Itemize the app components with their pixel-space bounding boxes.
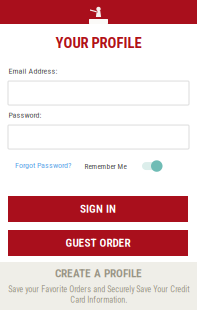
button[interactable]: GUEST ORDER <box>8 230 188 256</box>
button[interactable]: CREATE A PROFILE <box>0 262 197 310</box>
button[interactable]: Remember Me <box>84 160 162 174</box>
staticText: CREATE A PROFILE <box>55 267 142 280</box>
button[interactable]: Forgot Password? <box>15 160 71 171</box>
staticText: SIGN IN <box>80 202 116 216</box>
staticText: Email Address: <box>8 66 57 76</box>
staticText: YOUR PROFILE <box>55 34 141 52</box>
staticText: Save your Favorite Orders and Securely S… <box>8 284 189 305</box>
staticText: Remember Me <box>84 162 126 171</box>
button[interactable]: SIGN IN <box>8 196 188 222</box>
staticText: Forgot Password? <box>15 160 71 170</box>
staticText: GUEST ORDER <box>65 236 130 250</box>
staticText: Password: <box>8 110 41 120</box>
